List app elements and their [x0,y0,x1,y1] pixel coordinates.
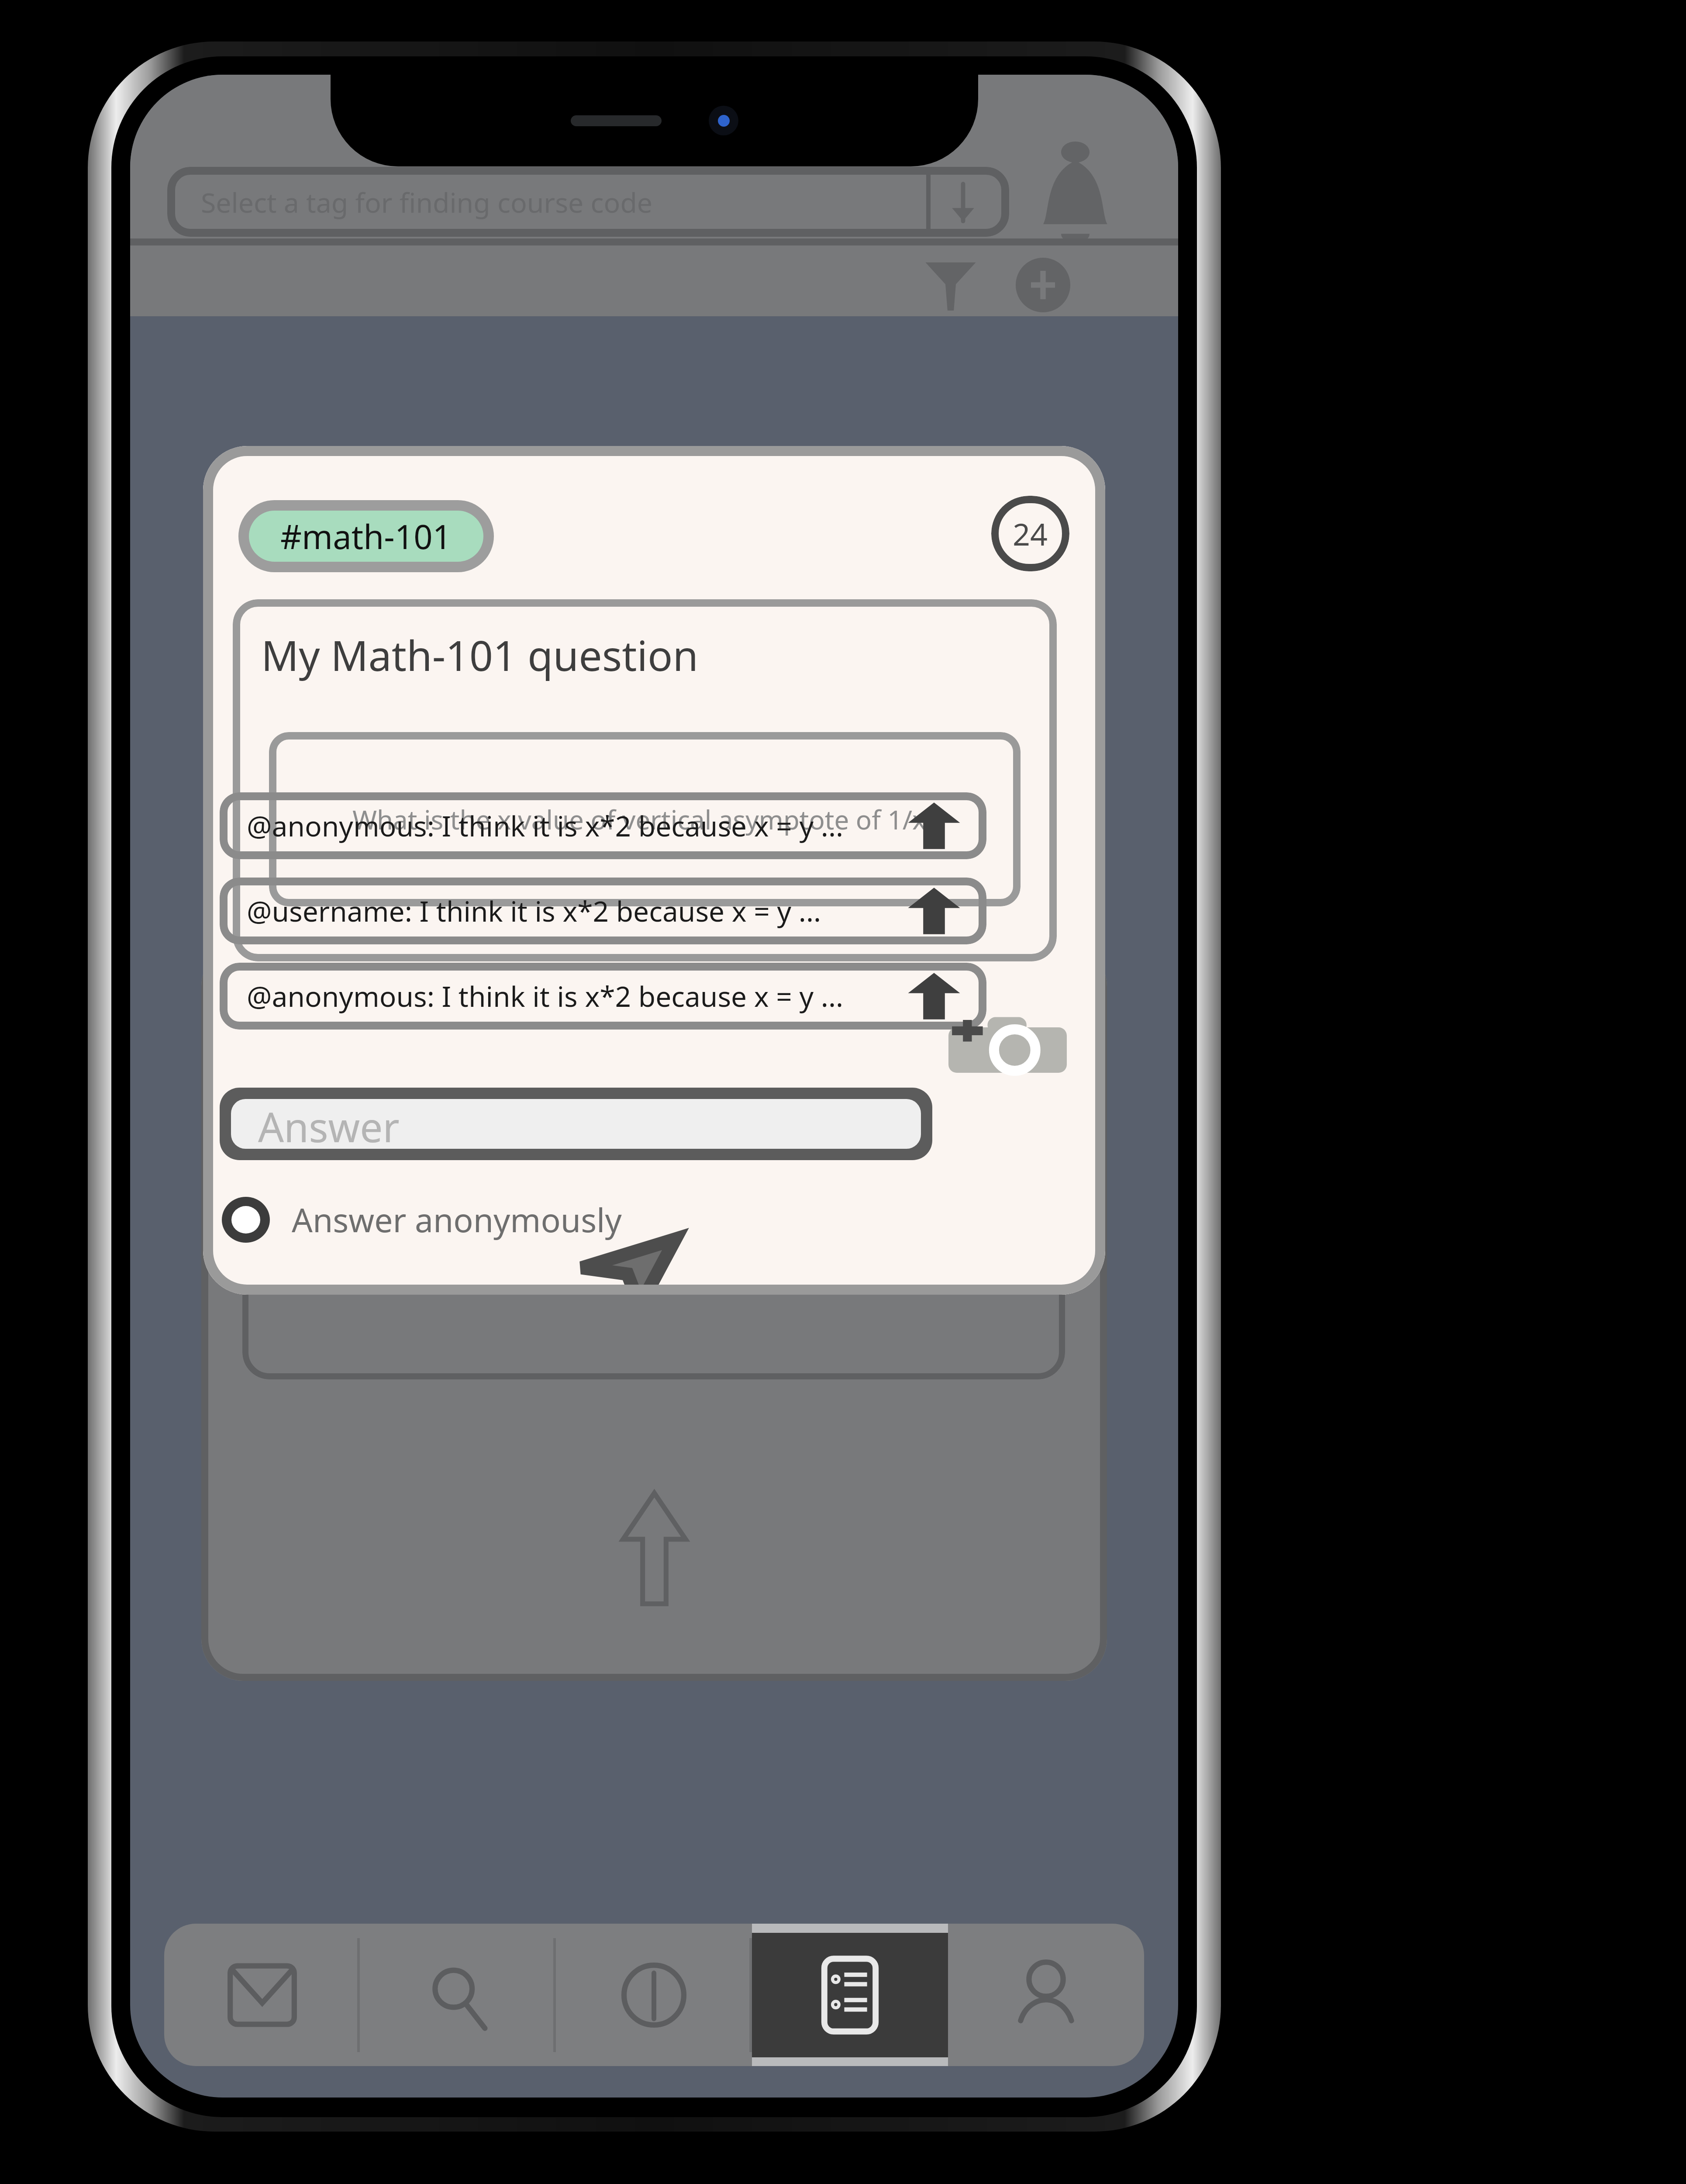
button[interactable]: Info [556,1924,752,2066]
button[interactable]: Messages [164,1924,360,2066]
button[interactable]: Answer anonymously [222,1189,622,1250]
staticText: Answer [258,1099,400,1149]
button[interactable]: Add photo [948,1016,1067,1073]
button[interactable]: Send answer [576,1236,679,1295]
staticText: My Math-101 question [261,626,699,683]
staticText: Answer anonymously [292,1197,622,1242]
staticText: @anonymous: I think it is x*2 because x … [247,977,907,1015]
staticText: #math-101 [280,514,452,559]
other: Upvote [907,887,961,935]
other: Profile [1040,142,1111,238]
staticText: Select a tag for finding course code [201,183,653,221]
other: Upvote [907,972,961,1020]
button[interactable]: @anonymous: I think it is x*2 because x … [220,792,986,859]
staticText: What is the x value of vertical asymptot… [352,802,938,837]
other: Upvote [907,802,961,850]
button[interactable]: @username: I think it is x*2 because x =… [220,878,986,944]
button[interactable]: Search [360,1924,556,2066]
staticText: 24 [1013,513,1048,554]
button[interactable]: Select a tag for finding course code [167,167,1009,237]
staticText: @username: I think it is x*2 because x =… [247,892,907,930]
button[interactable]: Answer [231,1099,921,1149]
button[interactable]: Account [948,1924,1144,2066]
other: Filter [924,260,977,311]
button[interactable]: @anonymous: I think it is x*2 because x … [220,963,986,1030]
button[interactable]: 24 [991,496,1069,571]
other: Add question [1016,258,1070,312]
button[interactable]: Feed [752,1924,948,2066]
button[interactable]: #math-101 [249,511,483,562]
other: Open tag list [938,177,988,227]
staticText: @anonymous: I think it is x*2 because x … [247,807,907,845]
